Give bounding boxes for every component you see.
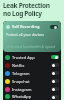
staticText: Leak Protection no Log Policy (3, 1, 50, 18)
button[interactable]: Toggle (50, 25, 58, 29)
staticText: Unlimited bandwidth & speed (6, 44, 55, 49)
button[interactable]: Trusted App (3, 53, 61, 61)
staticText: Trusted App (12, 55, 35, 60)
staticText: Self Recording (12, 24, 40, 29)
staticText: Netflix (12, 63, 25, 68)
staticText: Snapchat (12, 79, 30, 84)
staticText: WhatsApp (12, 94, 32, 99)
button[interactable]: WhatsApp (3, 93, 61, 100)
button[interactable]: Self Recording (3, 21, 61, 52)
staticText: Telegram (12, 71, 30, 76)
button[interactable]: Instagram (3, 85, 61, 93)
button[interactable]: Telegram (3, 69, 61, 77)
button[interactable]: Netflix (3, 61, 61, 69)
staticText: Instagram (12, 87, 32, 92)
staticText: Protect all your devices (6, 32, 44, 37)
button[interactable]: Snapchat (3, 77, 61, 85)
